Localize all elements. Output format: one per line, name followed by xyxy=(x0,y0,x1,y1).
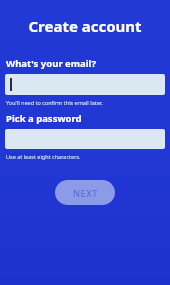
button[interactable] xyxy=(5,129,165,149)
button[interactable] xyxy=(5,74,165,95)
staticText: Use at least eight characters. xyxy=(6,153,81,160)
staticText: You'll need to confirm this email later. xyxy=(6,99,103,106)
staticText: What's your email? xyxy=(6,57,96,70)
staticText: Create account xyxy=(28,16,142,36)
staticText: Pick a password xyxy=(6,112,82,125)
staticText: NEXT xyxy=(73,187,98,199)
button[interactable]: NEXT xyxy=(55,180,115,205)
